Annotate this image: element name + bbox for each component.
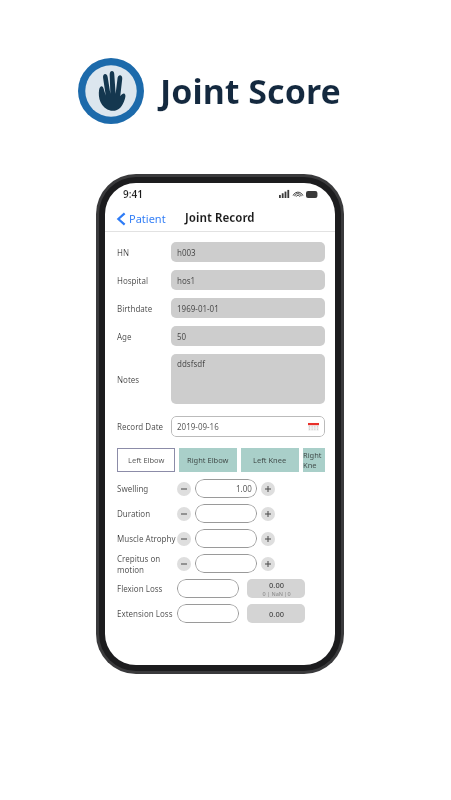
- button[interactable]: Left Knee: [241, 448, 299, 472]
- button[interactable]: [200, 529, 252, 548]
- button[interactable]: Notes: [117, 350, 325, 408]
- staticText: Extension Loss: [117, 608, 177, 619]
- button[interactable]: Increase: [261, 557, 275, 571]
- staticText: Joint Record: [185, 210, 255, 226]
- staticText: Right Kne: [303, 450, 325, 470]
- staticText: Swelling: [117, 483, 177, 494]
- button[interactable]: Decrease: [177, 507, 191, 521]
- other: Pick date: [308, 421, 319, 432]
- staticText: Left Elbow: [128, 455, 165, 465]
- button[interactable]: Decrease: [177, 557, 191, 571]
- staticText: Duration: [117, 508, 177, 519]
- button[interactable]: Decrease: [177, 532, 191, 546]
- staticText: Record Date: [117, 421, 171, 432]
- staticText: 1969-01-01: [177, 303, 219, 314]
- button[interactable]: Right Kne: [303, 448, 325, 472]
- button[interactable]: Decrease: [177, 482, 191, 496]
- staticText: Birthdate: [117, 303, 171, 314]
- staticText: h003: [177, 247, 196, 258]
- button[interactable]: [200, 504, 252, 523]
- staticText: Joint Score: [160, 68, 341, 114]
- staticText: Left Knee: [253, 455, 287, 465]
- button[interactable]: Increase: [261, 507, 275, 521]
- button[interactable]: Patient: [115, 209, 168, 228]
- button[interactable]: HN: [117, 238, 325, 266]
- button[interactable]: 1.00: [200, 479, 252, 498]
- staticText: 2019-09-16: [177, 421, 219, 432]
- button[interactable]: Birthdate: [117, 294, 325, 322]
- button[interactable]: [177, 579, 239, 598]
- staticText: ddsfsdf: [177, 358, 205, 369]
- button[interactable]: [200, 554, 252, 573]
- staticText: Notes: [117, 374, 171, 385]
- button[interactable]: Increase: [261, 482, 275, 496]
- staticText: 50: [177, 331, 187, 342]
- staticText: 9:41: [123, 187, 143, 201]
- staticText: Muscle Atrophy: [117, 533, 177, 544]
- staticText: Flexion Loss: [117, 583, 177, 594]
- staticText: 0.00: [269, 580, 284, 590]
- staticText: Hospital: [117, 275, 171, 286]
- staticText: Patient: [129, 211, 166, 226]
- staticText: Crepitus on motion: [117, 553, 177, 575]
- staticText: hos1: [177, 275, 196, 286]
- button[interactable]: [177, 604, 239, 623]
- button[interactable]: Increase: [261, 532, 275, 546]
- staticText: Right Elbow: [187, 455, 229, 465]
- staticText: 0.00: [269, 609, 284, 619]
- staticText: 0 | NaN |0: [262, 590, 291, 597]
- button[interactable]: Hospital: [117, 266, 325, 294]
- staticText: Age: [117, 331, 171, 342]
- button[interactable]: Right Elbow: [179, 448, 237, 472]
- button[interactable]: Record Date: [117, 412, 325, 440]
- staticText: HN: [117, 247, 171, 258]
- button[interactable]: Left Elbow: [117, 448, 175, 472]
- button[interactable]: Age: [117, 322, 325, 350]
- staticText: 1.00: [236, 483, 252, 494]
